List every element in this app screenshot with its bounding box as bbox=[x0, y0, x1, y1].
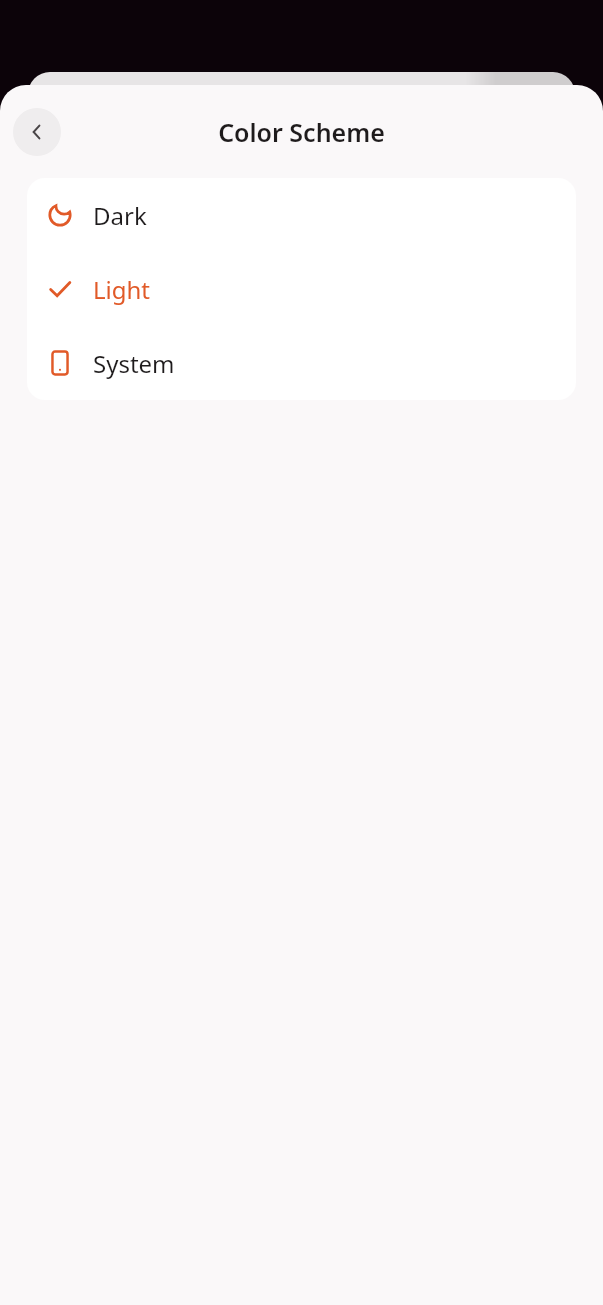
staticText: Color Scheme bbox=[218, 115, 385, 149]
staticText: Light bbox=[93, 273, 151, 306]
button[interactable]: Light bbox=[27, 252, 576, 326]
staticText: System bbox=[93, 347, 175, 380]
button[interactable]: Dark bbox=[27, 178, 576, 252]
button[interactable]: System bbox=[27, 326, 576, 400]
button[interactable]: Back bbox=[13, 108, 61, 156]
staticText: Dark bbox=[93, 199, 147, 232]
